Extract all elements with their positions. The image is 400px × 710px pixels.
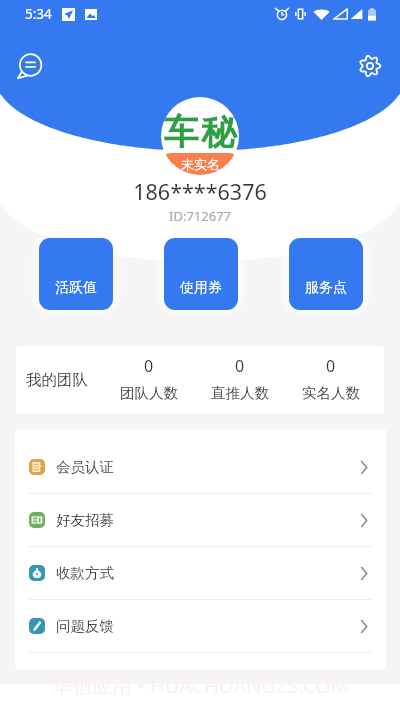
staticText: 服务点 (305, 279, 347, 297)
staticText: 0 (326, 355, 336, 377)
staticText: 0 (144, 355, 154, 377)
staticText: 团队人数 (120, 384, 178, 402)
staticText: 0 (235, 355, 245, 377)
button[interactable]: 使用券 (164, 238, 238, 310)
button[interactable]: 服务点 (289, 238, 363, 310)
staticText: 实名人数 (302, 384, 360, 402)
staticText: 5:34 (25, 5, 52, 23)
button[interactable]: Messages (10, 46, 50, 86)
staticText: 我的团队 (26, 370, 88, 390)
button[interactable]: 收款方式 (15, 547, 386, 600)
staticText: 未实名 (181, 156, 220, 172)
staticText: 186****6376 (0, 177, 400, 206)
button[interactable]: Profile avatar (161, 97, 239, 175)
button[interactable]: Settings (350, 46, 390, 86)
staticText: 好友招募 (56, 511, 114, 529)
staticText: 会员认证 (56, 458, 114, 476)
staticText: 华创应用 • HUACHUANGZS.COM (52, 672, 349, 699)
button[interactable]: 活跃值 (39, 238, 113, 310)
button[interactable]: 会员认证 (15, 441, 386, 494)
staticText: ID:712677 (0, 207, 400, 225)
button[interactable]: 问题反馈 (15, 600, 386, 653)
staticText: 直推人数 (211, 384, 269, 402)
button[interactable]: 好友招募 (15, 494, 386, 547)
staticText: 活跃值 (55, 279, 97, 297)
staticText: 收款方式 (56, 564, 114, 582)
button[interactable]: 我的团队 (16, 346, 384, 413)
staticText: 使用券 (180, 279, 222, 297)
staticText: 车秘 (162, 110, 238, 154)
staticText: 问题反馈 (56, 617, 114, 635)
staticText: CHUANGZS科技 (161, 154, 239, 175)
